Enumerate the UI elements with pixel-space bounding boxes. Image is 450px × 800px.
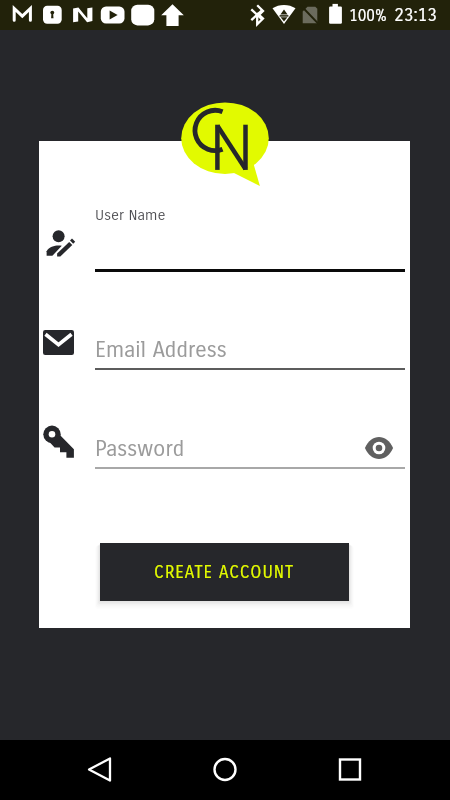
button[interactable] bbox=[95, 200, 405, 270]
button[interactable]: CREATE ACCOUNT bbox=[100, 543, 349, 601]
button[interactable]: Home bbox=[203, 747, 247, 791]
staticText: User Name bbox=[95, 206, 166, 224]
staticText: CREATE ACCOUNT bbox=[154, 562, 295, 582]
button[interactable]: Show password bbox=[364, 436, 394, 460]
staticText: Email Address bbox=[95, 337, 227, 363]
button[interactable] bbox=[95, 429, 355, 469]
staticText: 100% bbox=[349, 6, 387, 25]
button[interactable]: Back bbox=[78, 747, 122, 791]
staticText: 23:13 bbox=[394, 4, 438, 25]
staticText: Password bbox=[95, 436, 185, 462]
button[interactable]: Recent apps bbox=[328, 747, 372, 791]
button[interactable] bbox=[95, 330, 405, 370]
